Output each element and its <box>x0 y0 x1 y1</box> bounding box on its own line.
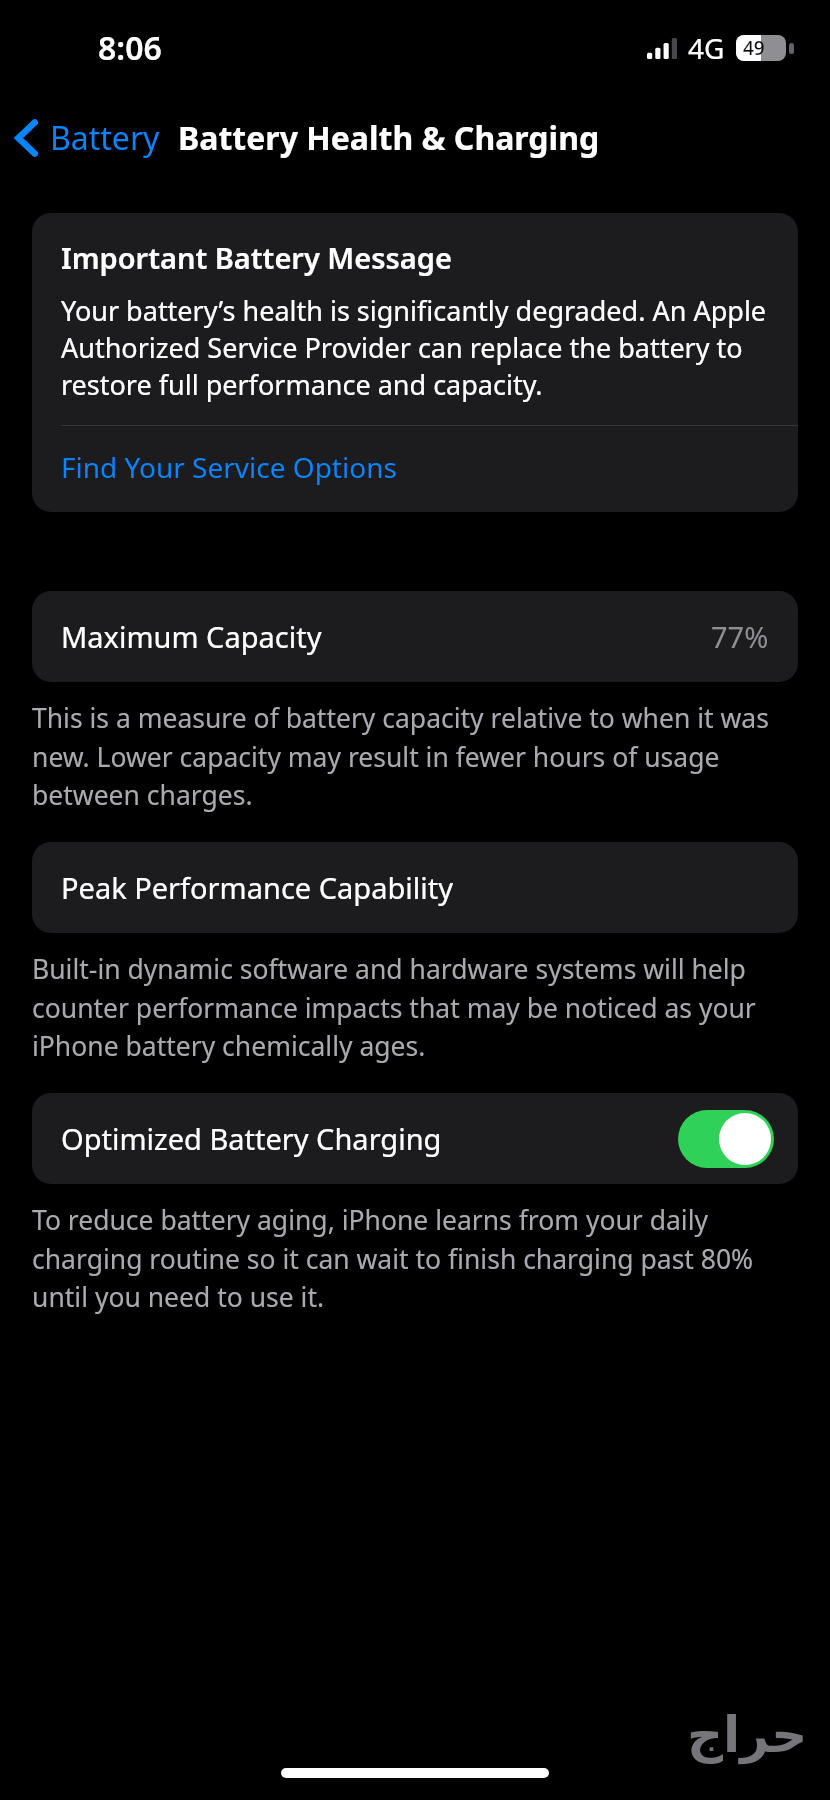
staticText: حراج <box>687 1706 808 1764</box>
staticText: 77% <box>711 617 769 656</box>
staticText: Battery Health & Charging <box>178 116 600 160</box>
staticText: Optimized Battery Charging <box>61 1119 442 1158</box>
staticText: Battery <box>50 116 160 160</box>
staticText: To reduce battery aging, iPhone learns f… <box>32 1202 798 1315</box>
staticText: This is a measure of battery capacity re… <box>32 700 798 813</box>
staticText: Maximum Capacity <box>61 617 322 656</box>
staticText: Find Your Service Options <box>61 448 397 486</box>
button[interactable]: Find Your Service Options <box>32 426 798 512</box>
staticText: 4G <box>688 29 725 67</box>
button[interactable]: Peak Performance Capability <box>32 842 798 933</box>
staticText: Built-in dynamic software and hardware s… <box>32 951 810 1064</box>
button[interactable]: Back to Battery <box>0 108 164 168</box>
staticText: 8:06 <box>98 26 162 70</box>
staticText: 49 <box>743 35 765 61</box>
button[interactable]: Optimized Battery Charging, on <box>678 1110 774 1168</box>
staticText: Peak Performance Capability <box>61 868 453 907</box>
button[interactable]: Maximum Capacity <box>32 591 798 682</box>
staticText: Important Battery Message <box>61 238 452 277</box>
staticText: Your battery’s health is significantly d… <box>61 292 772 403</box>
